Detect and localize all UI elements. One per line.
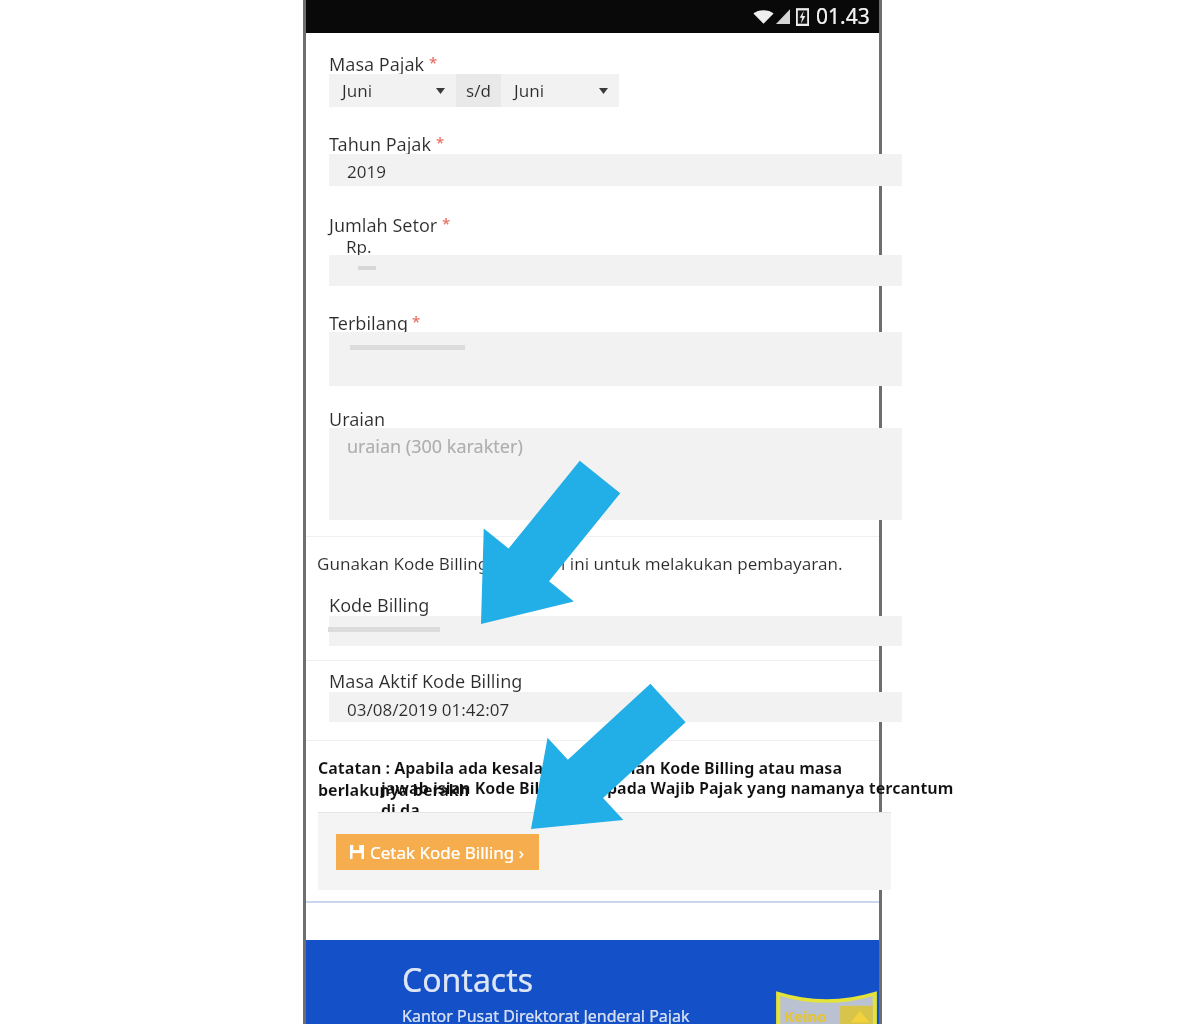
staticText: jawab isian Kode Billing ada pada Wajib …: [381, 777, 954, 821]
staticText: Kantor Pusat Direktorat Jenderal Pajak: [402, 1005, 690, 1024]
button[interactable]: Juni: [501, 74, 619, 107]
staticText: s/d: [466, 79, 491, 102]
staticText: Kode Billing: [329, 593, 430, 618]
staticText: Terbilang: [329, 311, 408, 336]
staticText: *: [438, 213, 451, 233]
staticText: 2019: [347, 160, 386, 183]
staticText: *: [408, 311, 421, 331]
staticText: Rp.: [346, 235, 372, 258]
staticText: Masa Pajak: [329, 52, 425, 77]
staticText: Gunakan Kode Billing di bawah ini untuk …: [317, 552, 843, 575]
staticText: Juni: [514, 79, 545, 102]
staticText: Uraian: [329, 407, 386, 432]
button[interactable]: Cetak Kode Billing ›: [336, 834, 539, 870]
staticText: *: [432, 132, 445, 152]
staticText: 01.43: [816, 2, 870, 31]
button[interactable]: uraian (300 karakter): [329, 428, 902, 520]
staticText: uraian (300 karakter): [347, 434, 523, 459]
button[interactable]: 2019: [329, 154, 902, 186]
button[interactable]: [329, 616, 902, 646]
staticText: Masa Aktif Kode Billing: [329, 669, 523, 694]
staticText: Juni: [342, 79, 373, 102]
button[interactable]: s/d: [456, 74, 501, 107]
staticText: Keino: [784, 1006, 827, 1024]
staticText: 03/08/2019 01:42:07: [347, 698, 510, 721]
staticText: Tahun Pajak: [329, 132, 432, 157]
staticText: Catatan : Apabila ada kesalahan pengisia…: [318, 757, 891, 801]
other: Keino logo: [774, 986, 879, 1024]
staticText: Contacts: [402, 958, 534, 1002]
staticText: Cetak Kode Billing ›: [370, 841, 525, 864]
button[interactable]: 03/08/2019 01:42:07: [329, 692, 902, 722]
button[interactable]: Juni: [329, 74, 456, 107]
staticText: *: [425, 52, 438, 72]
staticText: Jumlah Setor: [329, 213, 438, 238]
